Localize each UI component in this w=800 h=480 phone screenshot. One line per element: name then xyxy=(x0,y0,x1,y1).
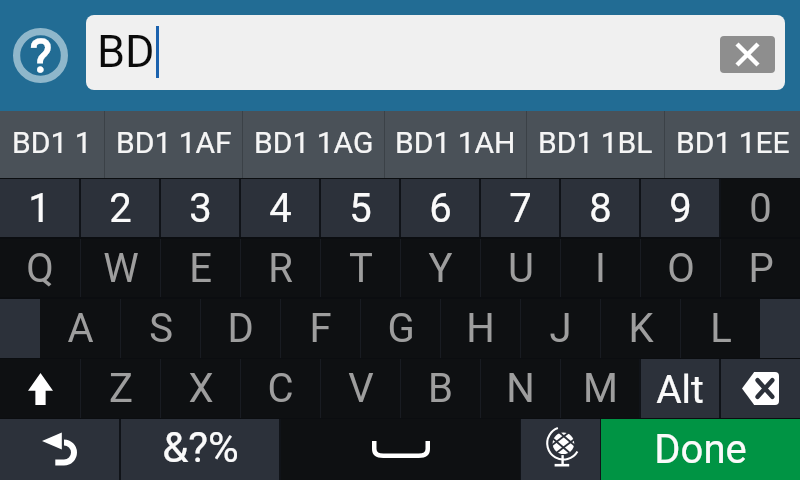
staticText: 9 xyxy=(669,185,692,232)
staticText: C xyxy=(267,365,294,412)
staticText: BD1 1 xyxy=(12,125,92,160)
button[interactable]: &?% xyxy=(121,419,279,480)
staticText: M xyxy=(583,365,618,412)
button[interactable]: Change language xyxy=(521,419,600,480)
button[interactable]: 6 xyxy=(401,179,479,237)
button[interactable]: P xyxy=(721,239,800,297)
staticText: A xyxy=(67,305,94,352)
button[interactable]: I xyxy=(561,239,640,297)
button[interactable]: B xyxy=(401,359,480,418)
staticText: 2 xyxy=(109,185,132,232)
button[interactable]: 9 xyxy=(641,179,719,237)
staticText: Y xyxy=(428,245,453,292)
staticText: BD1 1AH xyxy=(395,125,516,160)
button[interactable]: 4 xyxy=(241,179,319,237)
button[interactable]: Help xyxy=(13,28,68,83)
staticText: BD1 1BL xyxy=(538,125,653,160)
button[interactable]: J xyxy=(521,299,600,358)
staticText: T xyxy=(349,245,373,292)
button[interactable]: A xyxy=(40,299,120,358)
staticText: 0 xyxy=(749,185,772,232)
staticText: O xyxy=(667,245,695,292)
button[interactable]: 8 xyxy=(561,179,639,237)
staticText: BD1 1AG xyxy=(254,125,374,160)
staticText: R xyxy=(268,245,293,292)
button[interactable]: T xyxy=(321,239,400,297)
staticText: D xyxy=(227,305,254,352)
button[interactable]: E xyxy=(161,239,240,297)
button[interactable]: H xyxy=(441,299,520,358)
button[interactable]: Done xyxy=(601,419,800,480)
button[interactable]: Shift xyxy=(0,359,80,418)
staticText: X xyxy=(188,365,214,412)
staticText: N xyxy=(506,365,535,412)
staticText: B xyxy=(428,365,453,412)
button[interactable]: O xyxy=(641,239,720,297)
staticText: &?% xyxy=(162,423,239,472)
button[interactable]: 1 xyxy=(0,179,79,237)
button[interactable]: R xyxy=(241,239,320,297)
staticText: 1 xyxy=(28,185,51,232)
button[interactable]: W xyxy=(81,239,160,297)
button[interactable]: Alt xyxy=(641,359,719,418)
staticText: P xyxy=(748,245,774,292)
button[interactable]: 0 xyxy=(721,179,800,237)
staticText: Q xyxy=(26,245,54,292)
staticText: W xyxy=(103,245,139,292)
staticText: ? xyxy=(30,29,52,83)
staticText: K xyxy=(628,305,654,352)
button[interactable]: BD1 1AH xyxy=(385,111,526,178)
staticText: Alt xyxy=(656,367,704,413)
button[interactable]: C xyxy=(241,359,320,418)
staticText: L xyxy=(710,305,732,352)
staticText: Done xyxy=(654,426,747,473)
staticText: 4 xyxy=(269,185,292,232)
staticText: 3 xyxy=(189,185,212,232)
button[interactable]: K xyxy=(601,299,680,358)
button[interactable]: 7 xyxy=(481,179,559,237)
button[interactable]: BD1 1AG xyxy=(243,111,384,178)
staticText: E xyxy=(189,245,212,292)
staticText: Z xyxy=(109,365,133,412)
staticText: BD1 1AF xyxy=(116,125,232,160)
button[interactable]: F xyxy=(281,299,360,358)
staticText: S xyxy=(149,305,173,352)
button[interactable]: 5 xyxy=(321,179,399,237)
button[interactable]: Backspace xyxy=(721,359,800,418)
button[interactable]: Y xyxy=(401,239,480,297)
button[interactable]: BD1 1 xyxy=(0,111,104,178)
button[interactable]: Z xyxy=(81,359,160,418)
button[interactable]: BD1 1BL xyxy=(527,111,664,178)
staticText: I xyxy=(595,245,606,292)
staticText: BD xyxy=(97,25,155,78)
button[interactable]: Space xyxy=(281,419,520,480)
staticText: V xyxy=(348,365,374,412)
button[interactable]: M xyxy=(561,359,639,418)
staticText: BD1 1EE xyxy=(676,125,790,160)
staticText: G xyxy=(387,305,415,352)
button[interactable]: X xyxy=(161,359,240,418)
button[interactable]: BD1 1AF xyxy=(105,111,242,178)
button[interactable]: 3 xyxy=(161,179,239,237)
button[interactable]: G xyxy=(361,299,440,358)
button[interactable]: 2 xyxy=(81,179,159,237)
staticText: H xyxy=(466,305,495,352)
staticText: 6 xyxy=(429,185,452,232)
button[interactable]: V xyxy=(321,359,400,418)
button[interactable]: BD1 1EE xyxy=(665,111,800,178)
button[interactable]: BD xyxy=(86,15,785,90)
staticText: 7 xyxy=(509,185,532,232)
button[interactable]: D xyxy=(201,299,280,358)
staticText: 5 xyxy=(349,185,372,232)
staticText: U xyxy=(508,245,534,292)
button[interactable]: S xyxy=(121,299,200,358)
button[interactable]: Q xyxy=(0,239,80,297)
button[interactable]: L xyxy=(681,299,760,358)
button[interactable]: Clear xyxy=(720,36,775,73)
button[interactable]: N xyxy=(481,359,560,418)
staticText: 8 xyxy=(589,185,612,232)
staticText: F xyxy=(309,305,332,352)
button[interactable]: U xyxy=(481,239,560,297)
staticText: J xyxy=(549,305,572,352)
button[interactable]: Back xyxy=(0,419,119,480)
